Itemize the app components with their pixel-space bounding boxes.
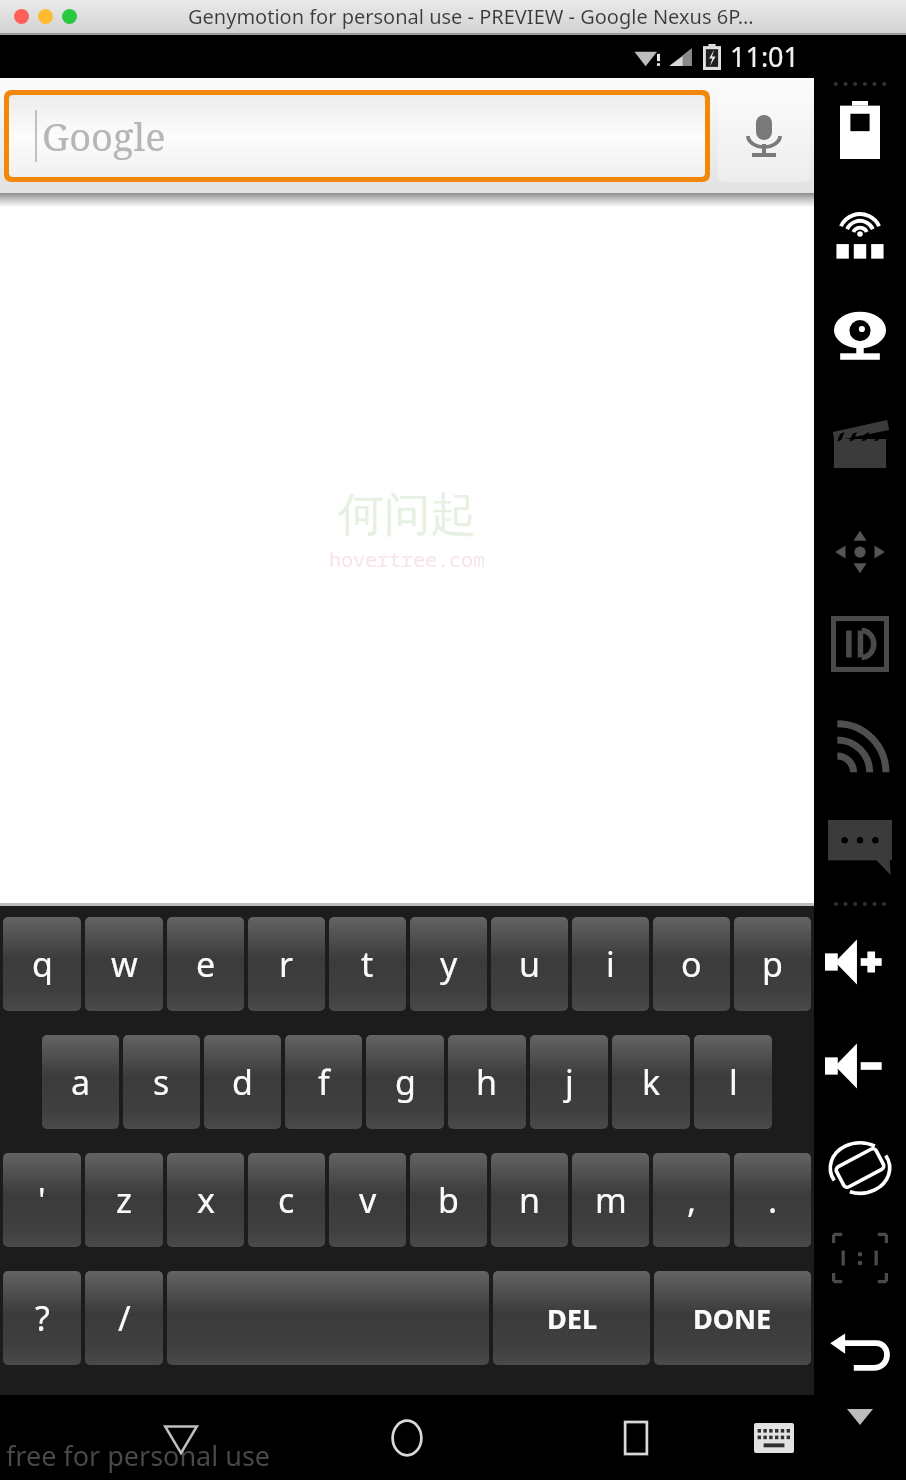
button[interactable]: Messages: [817, 817, 903, 879]
staticText: a: [71, 1059, 91, 1105]
staticText: j: [565, 1059, 574, 1105]
staticText: e: [196, 941, 216, 987]
button[interactable]: Back: [150, 1407, 212, 1469]
button[interactable]: Recent apps: [605, 1407, 667, 1469]
staticText: ,: [687, 1177, 697, 1223]
staticText: z: [116, 1177, 132, 1223]
button[interactable]: z: [85, 1153, 163, 1247]
staticText: DEL: [547, 1300, 597, 1337]
staticText: u: [519, 941, 541, 987]
button[interactable]: Identifiers: [817, 613, 903, 675]
button[interactable]: t: [329, 917, 406, 1011]
staticText: t: [361, 941, 374, 987]
button[interactable]: b: [410, 1153, 487, 1247]
button[interactable]: Space: [167, 1271, 489, 1365]
staticText: m: [595, 1177, 627, 1223]
button[interactable]: m: [572, 1153, 649, 1247]
button[interactable]: p: [734, 917, 811, 1011]
button[interactable]: GPS: [817, 203, 903, 265]
button[interactable]: r: [248, 917, 325, 1011]
staticText: o: [681, 941, 702, 987]
button[interactable]: Video recording: [817, 413, 903, 475]
staticText: c: [278, 1177, 295, 1223]
staticText: p: [762, 941, 783, 987]
staticText: Genymotion for personal use - PREVIEW - …: [188, 3, 754, 30]
button[interactable]: Back: [817, 1321, 903, 1383]
button[interactable]: Home: [376, 1407, 438, 1469]
staticText: free for personal use: [6, 1437, 271, 1474]
button[interactable]: a: [42, 1035, 119, 1129]
button[interactable]: Volume down: [817, 1035, 903, 1097]
button[interactable]: ': [3, 1153, 81, 1247]
button[interactable]: Camera: [817, 305, 903, 367]
button[interactable]: q: [3, 917, 81, 1011]
staticText: q: [32, 941, 53, 987]
staticText: s: [153, 1059, 170, 1105]
staticText: 何问起: [338, 486, 476, 544]
button[interactable]: Volume up: [817, 931, 903, 993]
button[interactable]: Rotate: [817, 1137, 903, 1199]
staticText: l: [729, 1059, 738, 1105]
button[interactable]: ,: [653, 1153, 730, 1247]
staticText: DONE: [693, 1300, 772, 1337]
button[interactable]: u: [491, 917, 568, 1011]
staticText: hovertree.com: [329, 546, 485, 573]
button[interactable]: j: [530, 1035, 608, 1129]
button[interactable]: Google: [9, 95, 705, 177]
staticText: b: [438, 1177, 459, 1223]
button[interactable]: DEL: [493, 1271, 650, 1365]
button[interactable]: Switch keyboard: [743, 1407, 805, 1469]
button[interactable]: n: [491, 1153, 568, 1247]
button[interactable]: e: [167, 917, 244, 1011]
staticText: d: [232, 1059, 253, 1105]
button[interactable]: k: [612, 1035, 690, 1129]
staticText: k: [642, 1059, 661, 1105]
staticText: w: [111, 941, 138, 987]
button[interactable]: f: [285, 1035, 362, 1129]
staticText: Google: [42, 110, 166, 162]
button[interactable]: Network: [817, 717, 903, 779]
staticText: .: [768, 1177, 778, 1223]
button[interactable]: g: [366, 1035, 444, 1129]
button[interactable]: s: [123, 1035, 200, 1129]
button[interactable]: x: [167, 1153, 244, 1247]
button[interactable]: /: [85, 1271, 163, 1365]
staticText: f: [318, 1059, 330, 1105]
button[interactable]: Navigation pad: [817, 521, 903, 583]
staticText: r: [279, 941, 294, 987]
button[interactable]: Voice search: [718, 90, 810, 182]
button[interactable]: d: [204, 1035, 281, 1129]
button[interactable]: v: [329, 1153, 406, 1247]
staticText: h: [476, 1059, 498, 1105]
staticText: v: [359, 1177, 377, 1223]
staticText: y: [440, 941, 458, 987]
staticText: ': [38, 1177, 46, 1223]
button[interactable]: c: [248, 1153, 325, 1247]
button[interactable]: Scale 1:1: [817, 1227, 903, 1289]
staticText: 11:01: [730, 38, 800, 75]
button[interactable]: .: [734, 1153, 811, 1247]
button[interactable]: Battery: [817, 99, 903, 161]
staticText: ?: [35, 1295, 50, 1341]
button[interactable]: DONE: [654, 1271, 811, 1365]
staticText: g: [395, 1059, 416, 1105]
button[interactable]: y: [410, 917, 487, 1011]
button[interactable]: w: [85, 917, 163, 1011]
button[interactable]: ?: [3, 1271, 81, 1365]
button[interactable]: l: [694, 1035, 772, 1129]
staticText: x: [197, 1177, 215, 1223]
button[interactable]: h: [448, 1035, 526, 1129]
staticText: n: [519, 1177, 541, 1223]
staticText: /: [118, 1295, 131, 1341]
button[interactable]: i: [572, 917, 649, 1011]
staticText: i: [606, 941, 615, 987]
button[interactable]: o: [653, 917, 730, 1011]
